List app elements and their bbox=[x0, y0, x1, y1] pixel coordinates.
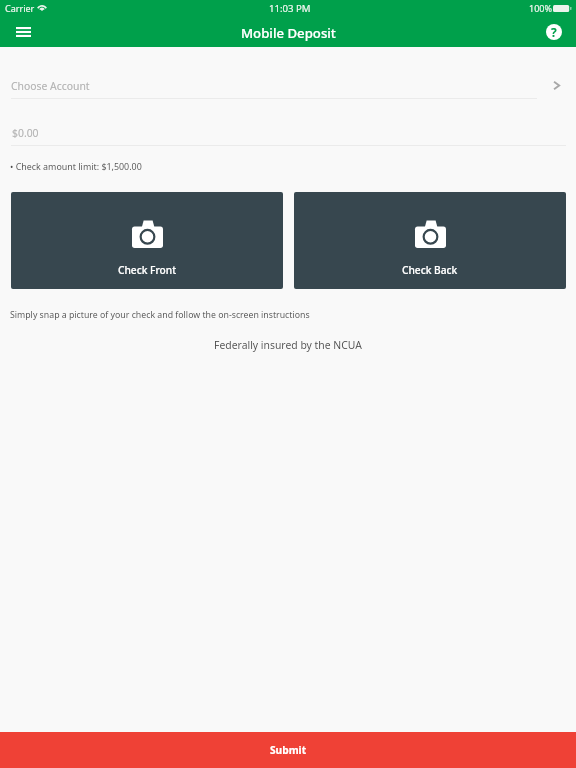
staticText: • Check amount limit: $1,500.00 bbox=[10, 160, 142, 172]
staticText: Check Front bbox=[118, 263, 177, 277]
staticText: Federally insured by the NCUA bbox=[0, 338, 576, 352]
button[interactable]: Help bbox=[541, 19, 567, 45]
button[interactable]: $0.00 bbox=[0, 99, 576, 146]
button[interactable]: Check Back bbox=[294, 192, 566, 289]
staticText: Carrier bbox=[5, 2, 35, 14]
staticText: Choose Account bbox=[11, 79, 90, 93]
button[interactable]: Submit bbox=[0, 732, 576, 768]
button[interactable]: Menu bbox=[8, 18, 38, 47]
staticText: Submit bbox=[270, 743, 307, 757]
staticText: ? bbox=[551, 24, 557, 40]
other: Choose account bbox=[553, 81, 560, 90]
staticText: 11:03 PM bbox=[269, 2, 311, 15]
staticText: Simply snap a picture of your check and … bbox=[10, 309, 310, 321]
staticText: $0.00 bbox=[12, 126, 39, 140]
staticText: 100% bbox=[529, 2, 552, 14]
staticText: Mobile Deposit bbox=[241, 24, 336, 42]
staticText: Check Back bbox=[402, 263, 458, 277]
button[interactable]: Choose Account bbox=[0, 47, 576, 99]
button[interactable]: Check Front bbox=[11, 192, 283, 289]
